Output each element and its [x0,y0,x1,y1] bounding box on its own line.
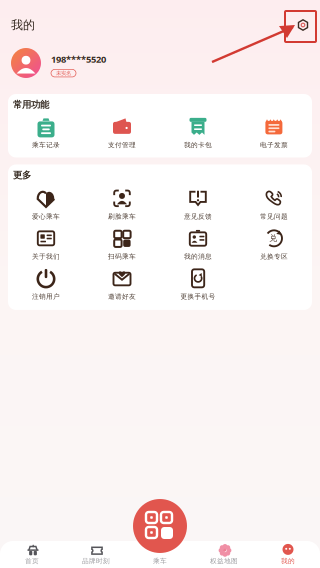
button[interactable]: 我的 [256,541,320,568]
staticText: 首页 [25,557,39,565]
button[interactable]: 扫码乘车 [133,499,187,553]
button[interactable]: 爱心乘车 [8,184,84,224]
staticText: 关于我们 [32,252,60,260]
button[interactable]: 刷脸乘车 [84,184,160,224]
button[interactable]: 关于我们 [8,224,84,264]
button[interactable]: 电子发票 [236,112,312,152]
staticText: 未实名 [56,70,71,76]
staticText: 支付管理 [108,141,136,149]
button[interactable]: 我的消息 [160,224,236,264]
button[interactable]: 更换手机号 [160,264,236,304]
button[interactable]: 注销用户 [8,264,84,304]
staticText: 乘车 [153,557,167,565]
staticText: 更多 [13,169,31,181]
staticText: 兑换专区 [260,252,288,260]
button[interactable]: 乘车记录 [8,112,84,152]
staticText: 乘车记录 [32,141,60,149]
staticText: 爱心乘车 [32,212,60,220]
staticText: 我的卡包 [184,141,212,149]
staticText: 兑 [269,233,277,243]
button[interactable]: 兑 [236,224,312,264]
button[interactable]: 品牌时刻 [64,541,128,568]
staticText: 常用功能 [13,99,49,110]
button[interactable]: 我的卡包 [160,112,236,152]
button[interactable]: 扫码乘车 [84,224,160,264]
staticText: 邀请好友 [108,292,136,300]
staticText: 我的 [281,557,295,565]
staticText: 电子发票 [260,141,288,149]
staticText: 198****5520 [51,53,106,65]
staticText: 意见反馈 [184,212,212,220]
button[interactable]: 常见问题 [236,184,312,224]
staticText: 注销用户 [32,292,60,300]
staticText: 常见问题 [260,212,288,220]
button[interactable]: 设置 [296,18,310,32]
button[interactable]: 邀请好友 [84,264,160,304]
staticText: 更换手机号 [180,292,215,300]
button[interactable]: 支付管理 [84,112,160,152]
staticText: 品牌时刻 [82,557,110,565]
staticText: 我的消息 [184,252,212,260]
staticText: 扫码乘车 [108,252,136,260]
staticText: 刷脸乘车 [108,212,136,220]
staticText: 我的 [11,18,35,32]
button[interactable]: 乘车 [128,541,192,568]
staticText: 权益地图 [210,557,238,565]
button[interactable]: 首页 [0,541,64,568]
button[interactable]: 权益地图 [192,541,256,568]
button[interactable]: 意见反馈 [160,184,236,224]
